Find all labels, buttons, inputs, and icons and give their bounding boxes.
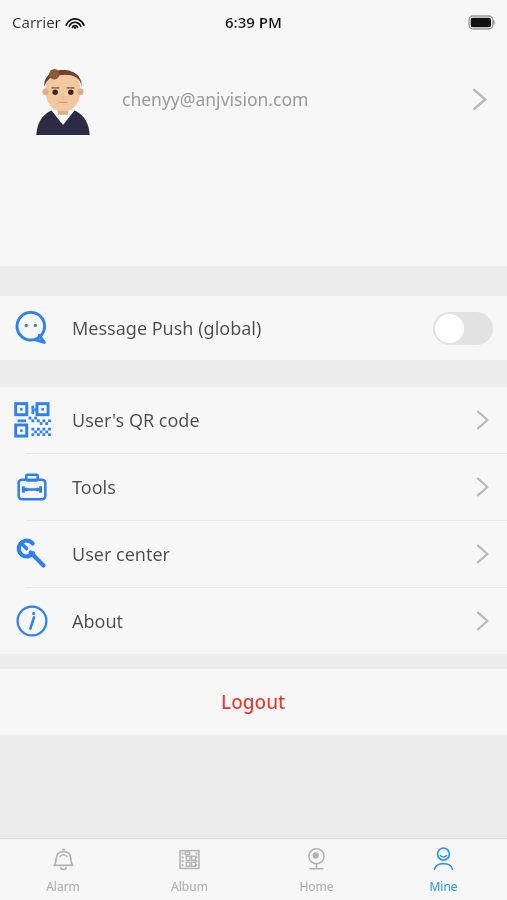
staticText: Mine — [429, 878, 458, 894]
staticText: Home — [299, 878, 334, 894]
staticText: Album — [171, 878, 208, 894]
button[interactable]: Tools — [0, 454, 507, 520]
button[interactable]: User's QR code — [0, 387, 507, 453]
staticText: Message Push (global) — [72, 316, 262, 341]
staticText: chenyy@anjvision.com — [122, 87, 309, 111]
staticText: Alarm — [46, 878, 80, 894]
button[interactable]: Alarm — [0, 839, 126, 900]
button[interactable]: Album — [126, 839, 253, 900]
staticText: User's QR code — [72, 408, 200, 433]
button[interactable]: User center — [0, 521, 507, 587]
button[interactable]: Logout — [0, 669, 507, 735]
button[interactable]: Message push toggle — [433, 312, 493, 345]
staticText: Carrier — [12, 12, 61, 32]
staticText: 6:39 PM — [225, 12, 282, 32]
staticText: Tools — [72, 475, 116, 500]
button[interactable]: chenyy@anjvision.com — [0, 44, 507, 266]
staticText: Logout — [221, 689, 286, 715]
button[interactable]: Mine — [380, 839, 507, 900]
button[interactable]: Message Push (global) — [0, 296, 507, 360]
button[interactable]: Home — [253, 839, 380, 900]
staticText: About — [72, 609, 124, 634]
button[interactable]: About — [0, 588, 507, 654]
staticText: User center — [72, 542, 171, 567]
